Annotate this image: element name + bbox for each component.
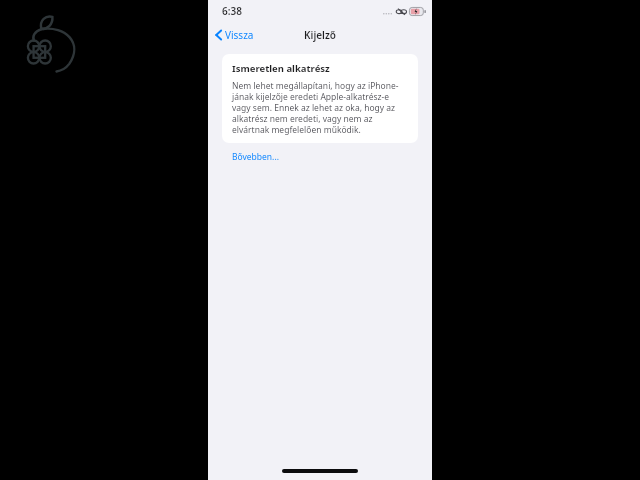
staticText: Ismeretlen alkatrész [232,62,330,75]
staticText: 6:38 [222,4,242,18]
button[interactable]: Bővebben... [222,149,289,165]
staticText: Nem lehet megállapítani, hogy az iPhone-… [232,80,408,135]
staticText: Bővebben... [232,151,279,163]
button[interactable]: Vissza [208,26,260,44]
staticText: Vissza [225,28,254,42]
staticText: Kijelző [304,28,336,42]
